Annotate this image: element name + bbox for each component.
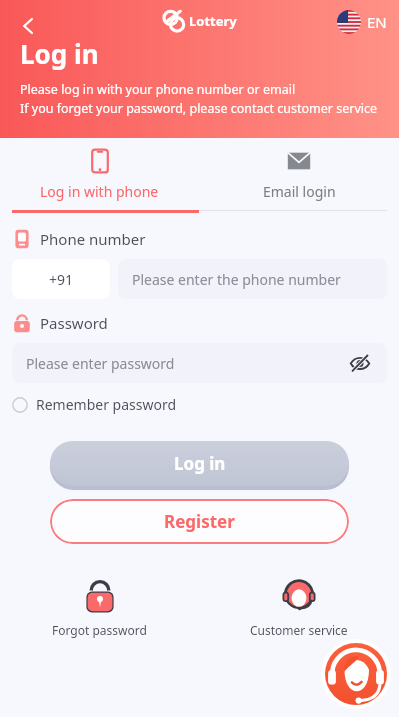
staticText: Email login <box>263 182 336 201</box>
staticText: Please log in with your phone number or … <box>20 81 296 98</box>
button[interactable]: Customer service <box>199 576 399 638</box>
staticText: Lottery <box>189 12 237 30</box>
button[interactable]: Email login <box>199 138 399 210</box>
staticText: Please enter the phone number <box>132 270 341 289</box>
button[interactable]: Customer support chat <box>321 639 391 709</box>
staticText: Log in <box>20 36 99 71</box>
button[interactable]: Show password <box>347 350 373 376</box>
button[interactable]: Log in with phone <box>0 138 199 210</box>
staticText: Register <box>164 510 235 533</box>
staticText: Please enter password <box>26 354 175 373</box>
button[interactable]: Log in <box>50 441 349 486</box>
button[interactable]: Please enter the phone number <box>118 259 387 299</box>
button[interactable]: EN <box>335 8 389 36</box>
staticText: Forgot password <box>52 622 147 638</box>
button[interactable]: Please enter password <box>12 343 387 383</box>
staticText: Log in <box>174 452 226 475</box>
staticText: +91 <box>49 270 74 289</box>
staticText: Log in with phone <box>40 182 159 201</box>
staticText: EN <box>367 12 387 32</box>
staticText: If you forget your password, please cont… <box>20 100 378 117</box>
button[interactable]: Forgot password <box>0 576 199 638</box>
staticText: Customer service <box>250 622 348 638</box>
button[interactable]: Register <box>50 499 349 544</box>
staticText: Remember password <box>36 395 177 414</box>
staticText: Phone number <box>40 229 146 249</box>
staticText: Password <box>40 313 108 333</box>
button[interactable]: Remember password <box>12 391 177 418</box>
button[interactable]: +91 <box>12 259 110 299</box>
button[interactable]: Back <box>8 6 48 46</box>
